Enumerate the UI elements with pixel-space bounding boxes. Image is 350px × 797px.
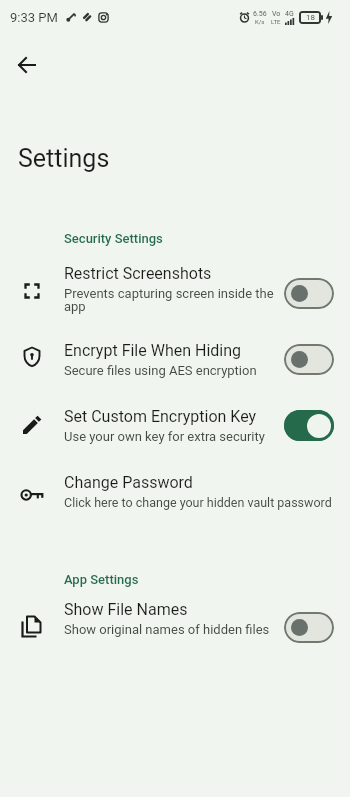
button[interactable]: [9, 48, 45, 84]
button[interactable]: [284, 612, 334, 643]
button[interactable]: [284, 278, 334, 309]
staticText: 6.56: [253, 10, 267, 18]
staticText: Change Password: [64, 473, 193, 492]
staticText: 18: [306, 13, 315, 22]
staticText: Use your own key for extra security: [64, 429, 265, 444]
button[interactable]: Change Password: [0, 458, 350, 524]
staticText: 4G: [285, 10, 294, 18]
staticText: App Settings: [64, 572, 139, 587]
button[interactable]: Set Custom Encryption Key: [0, 392, 350, 458]
staticText: Prevents capturing screen inside the app: [64, 286, 274, 314]
staticText: Encrypt File When Hiding: [64, 341, 242, 360]
staticText: Restrict Screenshots: [64, 264, 212, 283]
button[interactable]: Encrypt File When Hiding: [0, 326, 350, 392]
button[interactable]: [284, 344, 334, 375]
button[interactable]: Restrict Screenshots: [0, 252, 350, 326]
staticText: Secure files using AES encryption: [64, 363, 257, 378]
staticText: Security Settings: [64, 231, 163, 246]
button[interactable]: [284, 410, 334, 441]
staticText: Show File Names: [64, 600, 188, 619]
staticText: K/s: [255, 18, 265, 25]
staticText: Show original names of hidden files: [64, 622, 270, 637]
staticText: Click here to change your hidden vault p…: [64, 495, 332, 510]
button[interactable]: Show File Names: [0, 589, 350, 655]
staticText: Vo: [272, 10, 281, 18]
staticText: LTE: [271, 18, 281, 25]
staticText: 9:33 PM: [10, 10, 58, 25]
staticText: Settings: [18, 144, 110, 173]
staticText: Set Custom Encryption Key: [64, 407, 257, 426]
